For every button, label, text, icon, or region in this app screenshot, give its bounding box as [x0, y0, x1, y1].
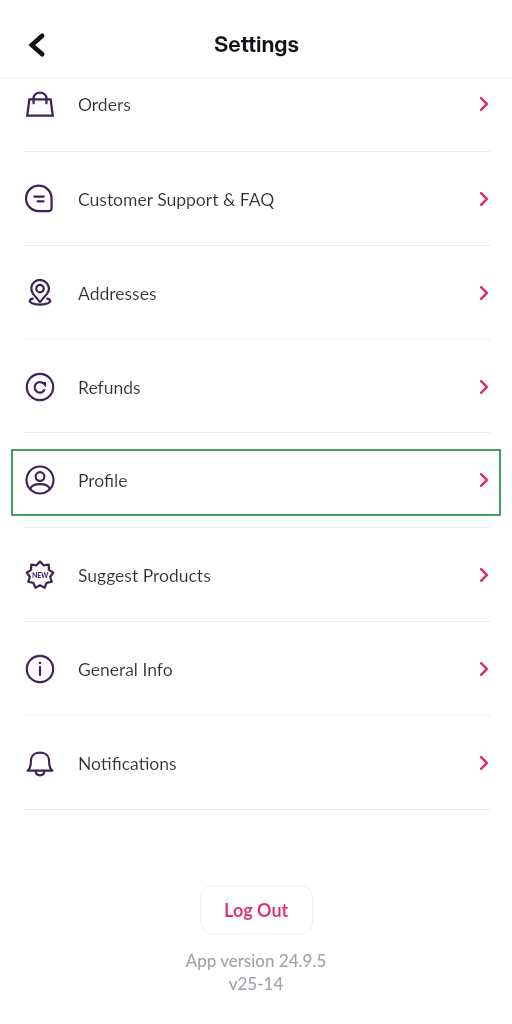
button[interactable]: Log Out: [200, 885, 313, 934]
staticText: Orders: [78, 94, 131, 115]
button[interactable]: Refunds: [0, 340, 512, 434]
staticText: Log Out: [224, 899, 289, 921]
staticText: Notifications: [78, 753, 177, 774]
staticText: General Info: [78, 659, 173, 680]
staticText: Profile: [78, 470, 128, 491]
staticText: NEW: [32, 571, 49, 579]
button[interactable]: NEW: [0, 528, 512, 622]
staticText: Settings: [214, 31, 299, 58]
button[interactable]: General Info: [0, 622, 512, 716]
button[interactable]: Addresses: [0, 246, 512, 340]
button[interactable]: Orders: [0, 57, 512, 151]
button[interactable]: Notifications: [0, 716, 512, 810]
staticText: Suggest Products: [78, 565, 211, 586]
staticText: Addresses: [78, 283, 157, 304]
staticText: Customer Support & FAQ: [78, 189, 275, 210]
button[interactable]: [11, 449, 501, 516]
button[interactable]: Customer Support & FAQ: [0, 152, 512, 246]
staticText: Refunds: [78, 377, 141, 398]
button[interactable]: Back: [13, 21, 61, 69]
staticText: App version 24.9.5 v25-14: [0, 950, 512, 994]
